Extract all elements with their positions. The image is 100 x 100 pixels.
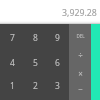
button[interactable]: 5 xyxy=(24,51,47,75)
staticText: × xyxy=(78,68,83,79)
button[interactable]: 2 xyxy=(24,74,47,98)
button[interactable]: 4 xyxy=(1,51,24,75)
button[interactable]: 7 xyxy=(1,26,24,50)
staticText: − xyxy=(78,83,83,94)
button[interactable]: Multiply xyxy=(69,64,91,82)
button[interactable]: Minus xyxy=(69,79,91,97)
button[interactable]: 3 xyxy=(46,74,69,98)
button[interactable]: 8 xyxy=(24,26,47,50)
staticText: 7 xyxy=(10,32,15,44)
staticText: 1 xyxy=(10,80,15,92)
staticText: 4 xyxy=(10,57,15,69)
staticText: 3,929.28 xyxy=(62,7,97,19)
button[interactable]: 1 xyxy=(1,74,24,98)
button[interactable]: 9 xyxy=(46,26,69,50)
staticText: 5 xyxy=(33,57,38,69)
staticText: DEL xyxy=(76,33,85,39)
staticText: ÷ xyxy=(78,49,83,60)
button[interactable]: Delete xyxy=(69,27,91,45)
staticText: 8 xyxy=(33,32,38,44)
staticText: 9 xyxy=(55,32,60,44)
staticText: 3 xyxy=(55,80,60,92)
button[interactable]: 6 xyxy=(46,51,69,75)
button[interactable]: Divide xyxy=(69,45,91,63)
staticText: 2 xyxy=(33,80,38,92)
staticText: 6 xyxy=(55,57,60,69)
